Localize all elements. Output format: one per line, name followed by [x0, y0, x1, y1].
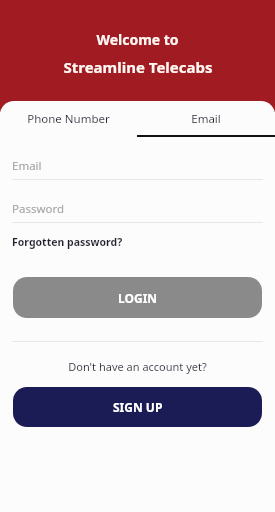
staticText: LOGIN — [118, 290, 158, 306]
staticText: SIGN UP — [113, 399, 163, 415]
staticText: Welcome to — [96, 30, 179, 49]
staticText: Forgotten password? — [12, 235, 123, 249]
staticText: Email — [191, 111, 221, 127]
staticText: Don't have an account yet? — [68, 359, 207, 374]
staticText: Password — [12, 201, 65, 217]
button[interactable]: Email — [12, 153, 263, 179]
button[interactable]: Password — [12, 196, 263, 222]
button[interactable]: LOGIN — [13, 277, 262, 318]
button[interactable]: Email — [137, 101, 275, 137]
staticText: Streamline Telecabs — [63, 57, 213, 77]
staticText: Email — [12, 158, 42, 174]
staticText: Phone Number — [27, 111, 110, 127]
button[interactable]: Phone Number — [0, 101, 137, 137]
button[interactable]: SIGN UP — [13, 387, 262, 427]
button[interactable]: Forgotten password? — [12, 235, 123, 249]
